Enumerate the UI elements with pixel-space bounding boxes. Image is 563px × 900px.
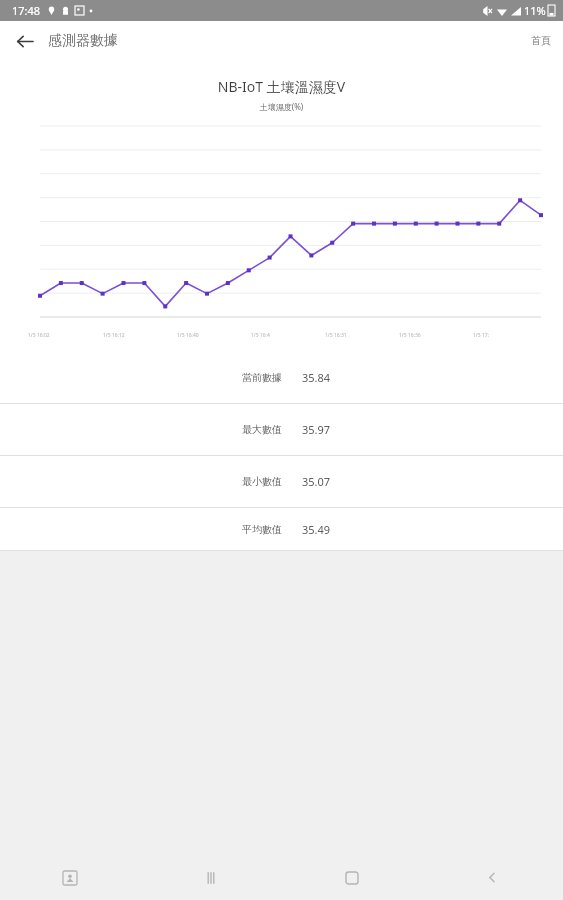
button[interactable]: NB-IoT 土壤溫濕度V (8, 65, 555, 347)
button[interactable]: 首頁 (523, 26, 559, 55)
staticText: 當前數據 (242, 371, 282, 384)
button[interactable]: 最大數值 (0, 404, 563, 455)
button[interactable]: Back (6, 23, 42, 59)
staticText: 土壤濕度(%) (8, 101, 555, 112)
button[interactable]: Recent apps (140, 855, 281, 900)
staticText: 11% (524, 3, 546, 18)
staticText: 35.07 (302, 474, 331, 489)
staticText: 1/5 16:4 (251, 332, 270, 339)
staticText: 1/5 16:02 (28, 332, 50, 339)
staticText: 最大數值 (242, 423, 282, 436)
staticText: 1/5 16:40 (177, 332, 199, 339)
button[interactable]: 當前數據 (0, 352, 563, 403)
staticText: 35.97 (302, 422, 331, 437)
staticText: 首頁 (531, 34, 551, 47)
staticText: 平均數值 (242, 523, 282, 536)
button[interactable]: Home (281, 855, 422, 900)
button[interactable]: 最小數值 (0, 456, 563, 507)
staticText: 最小數值 (242, 475, 282, 488)
staticText: NB-IoT 土壤溫濕度V (8, 77, 555, 96)
staticText: 1/5 16:31 (325, 332, 347, 339)
staticText: 1/5 16:36 (399, 332, 421, 339)
button[interactable]: 平均數值 (0, 508, 563, 550)
staticText: 35.84 (302, 370, 331, 385)
button[interactable]: Hide keyboard (0, 855, 140, 900)
staticText: 感測器數據 (48, 32, 118, 50)
staticText: 1/5 16:12 (103, 332, 125, 339)
staticText: 35.49 (302, 522, 331, 537)
staticText: 1/5 17: (473, 332, 489, 339)
staticText: 17:48 (12, 3, 41, 18)
